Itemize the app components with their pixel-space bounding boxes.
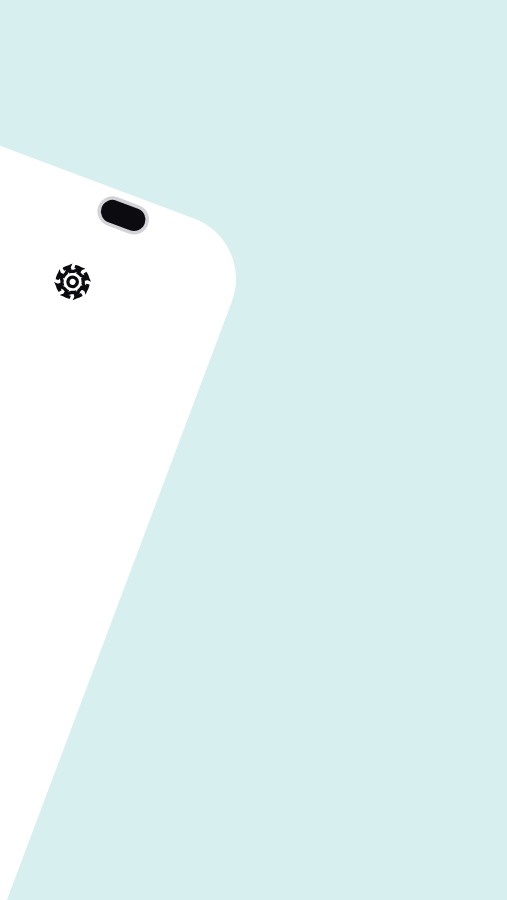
button[interactable]: Snapshot (110, 422, 204, 508)
button[interactable]: Settings (24, 136, 60, 172)
button[interactable]: Glow Airdrop, Send and ANC stakets (0, 738, 382, 900)
button[interactable]: Town hall, Make a swap (0, 558, 302, 680)
button[interactable]: Search (0, 296, 162, 388)
